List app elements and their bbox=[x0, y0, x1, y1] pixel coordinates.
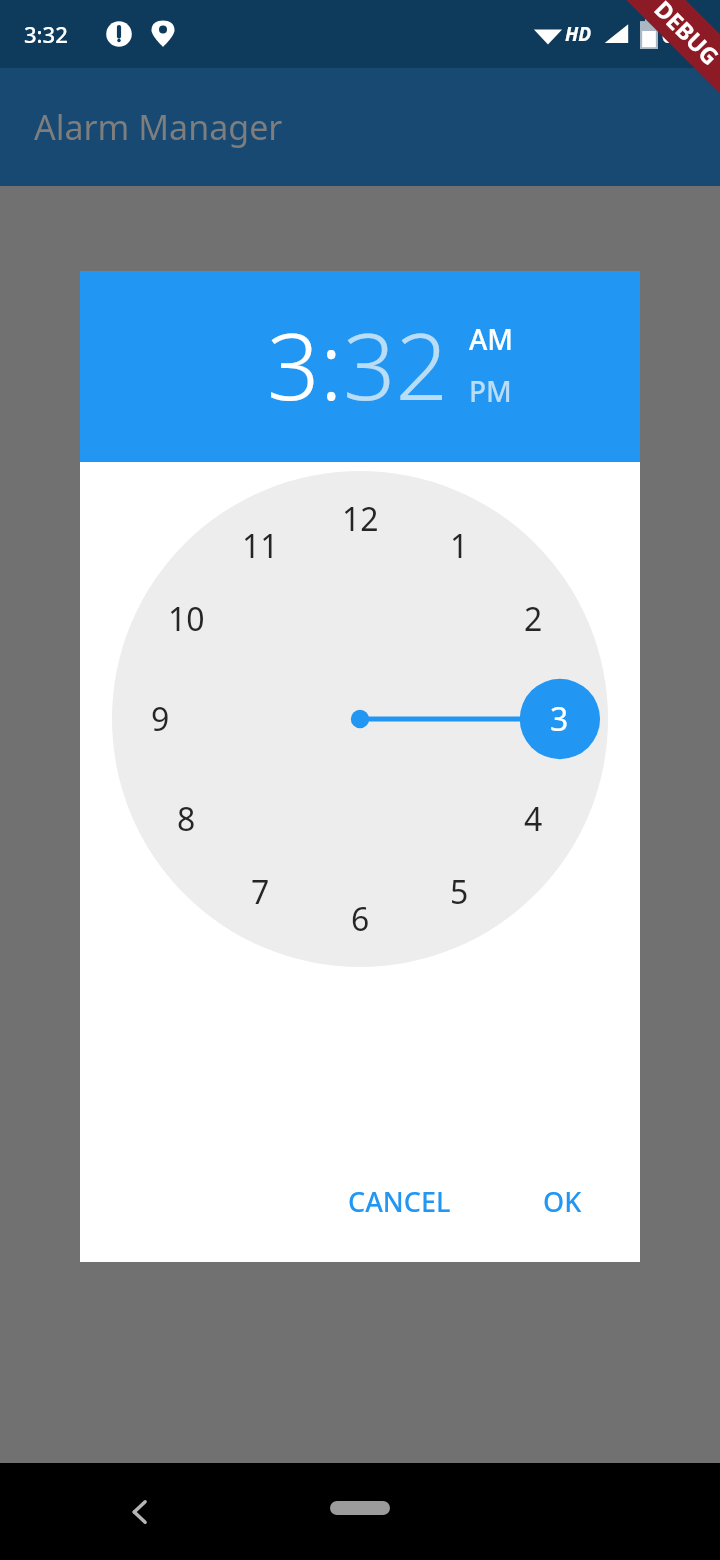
button[interactable]: Hour picker clock face bbox=[112, 471, 608, 967]
button[interactable]: OK bbox=[529, 1171, 596, 1232]
button[interactable]: 32 bbox=[343, 302, 449, 427]
staticText: Alarm Manager bbox=[34, 104, 283, 150]
staticText: 1 bbox=[450, 524, 469, 568]
button[interactable]: Back bbox=[124, 1496, 156, 1528]
staticText: HD bbox=[565, 21, 592, 47]
button[interactable]: PM bbox=[469, 372, 512, 410]
staticText: 3:32 bbox=[24, 19, 68, 49]
staticText: 7 bbox=[251, 870, 270, 914]
staticText: : bbox=[320, 302, 343, 427]
button[interactable]: AM bbox=[469, 320, 514, 358]
staticText: CANCEL bbox=[348, 1183, 451, 1220]
staticText: 5 bbox=[450, 870, 469, 914]
staticText: 2 bbox=[524, 597, 543, 641]
button[interactable]: CANCEL bbox=[330, 1171, 469, 1232]
staticText: 65% bbox=[662, 19, 708, 49]
staticText: PM bbox=[469, 372, 512, 410]
staticText: 8 bbox=[177, 797, 196, 841]
staticText: 10 bbox=[168, 597, 205, 641]
staticText: 4 bbox=[524, 797, 543, 841]
staticText: 9 bbox=[151, 697, 170, 741]
staticText: DEBUG bbox=[648, 0, 720, 72]
button[interactable]: 3 bbox=[267, 302, 320, 427]
button[interactable]: Home bbox=[330, 1501, 390, 1515]
staticText: 11 bbox=[242, 524, 279, 568]
staticText: 3 bbox=[550, 697, 569, 741]
staticText: OK bbox=[543, 1183, 582, 1220]
staticText: 6 bbox=[351, 897, 370, 941]
staticText: AM bbox=[469, 320, 514, 358]
staticText: 12 bbox=[342, 497, 379, 541]
